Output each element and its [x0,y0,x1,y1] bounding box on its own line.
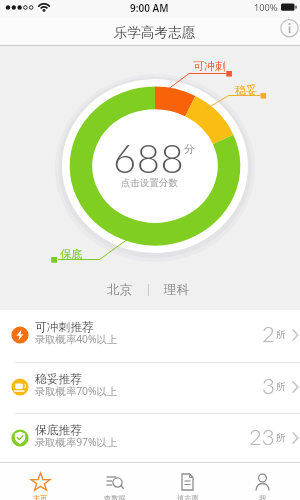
button[interactable]: 查数据 [77,462,152,500]
staticText: 可冲刺推荐 [35,320,94,335]
staticText: 乐学高考志愿 [114,24,195,41]
staticText: 填志愿 [177,494,199,500]
button[interactable] [278,18,300,46]
staticText: 可冲刺 [193,59,226,73]
staticText: 2 [262,320,275,346]
staticText: 所 [276,329,286,341]
staticText: 理科 [164,282,189,298]
button[interactable]: 填志愿 [150,462,225,500]
staticText: 我 [259,494,267,500]
button[interactable]: 保底推荐 [0,413,300,462]
staticText: 23 [249,423,275,449]
staticText: 100% [254,1,278,14]
staticText: 录取概率40%以上 [35,332,118,346]
staticText: 点击设置分数 [121,177,178,189]
staticText: 所 [276,381,286,393]
button[interactable]: 可冲刺推荐 [0,310,300,362]
staticText: 录取概率70%以上 [35,384,118,398]
staticText: 查数据 [104,494,126,500]
staticText: 分 [184,142,195,156]
staticText: 688 [113,134,185,182]
staticText: 9:00 AM [130,1,169,15]
button[interactable]: 我 [225,462,300,500]
button[interactable]: 稳妥推荐 [0,362,300,413]
staticText: 北京 [107,282,132,298]
staticText: 3 [262,372,275,398]
staticText: 稳妥推荐 [35,372,83,387]
button[interactable] [95,121,215,211]
staticText: 稳妥 [235,83,257,97]
staticText: 保底 [60,247,82,261]
button[interactable]: 主页 [2,462,77,500]
staticText: 保底推荐 [35,423,83,438]
staticText: 主页 [33,494,48,500]
staticText: 所 [276,432,286,444]
staticText: 录取概率97%以上 [35,435,118,449]
